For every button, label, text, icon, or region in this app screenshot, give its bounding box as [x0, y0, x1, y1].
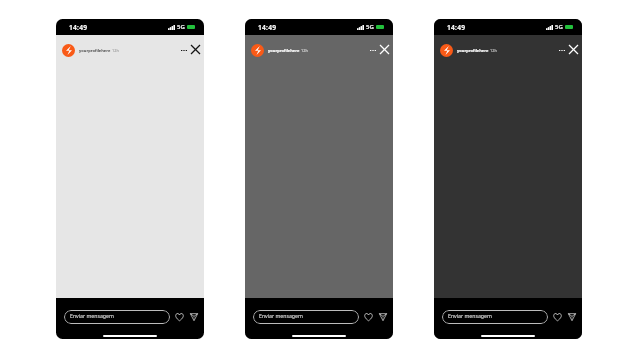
- staticText: 12h: [112, 48, 119, 53]
- staticText: 5G: [555, 23, 563, 31]
- staticText: Enviar mensagem: [259, 312, 303, 319]
- staticText: Enviar mensagem: [448, 312, 492, 319]
- button[interactable]: Enviar mensagem: [442, 310, 548, 324]
- button[interactable]: Share: [566, 311, 578, 323]
- staticText: 14:49: [447, 23, 466, 32]
- staticText: Enviar mensagem: [70, 312, 114, 319]
- staticText: yourprofilehere: [79, 48, 111, 53]
- button[interactable]: Close story: [567, 43, 580, 56]
- button[interactable]: More options: [557, 44, 567, 56]
- button[interactable]: [62, 44, 75, 57]
- staticText: 12h: [490, 48, 497, 53]
- staticText: yourprofilehere: [457, 48, 489, 53]
- button[interactable]: [251, 44, 264, 57]
- button[interactable]: Close story: [189, 43, 202, 56]
- button[interactable]: Enviar mensagem: [64, 310, 170, 324]
- button[interactable]: Share: [188, 311, 200, 323]
- button[interactable]: Like: [362, 311, 374, 323]
- button[interactable]: Share: [377, 311, 389, 323]
- button[interactable]: Like: [173, 311, 185, 323]
- staticText: 5G: [366, 23, 374, 31]
- button[interactable]: Close story: [378, 43, 391, 56]
- staticText: 5G: [177, 23, 185, 31]
- button[interactable]: Enviar mensagem: [253, 310, 359, 324]
- button[interactable]: [440, 44, 453, 57]
- staticText: 14:49: [69, 23, 88, 32]
- button[interactable]: More options: [179, 44, 189, 56]
- staticText: 14:49: [258, 23, 277, 32]
- staticText: 12h: [301, 48, 308, 53]
- staticText: yourprofilehere: [268, 48, 300, 53]
- button[interactable]: More options: [368, 44, 378, 56]
- button[interactable]: Like: [551, 311, 563, 323]
